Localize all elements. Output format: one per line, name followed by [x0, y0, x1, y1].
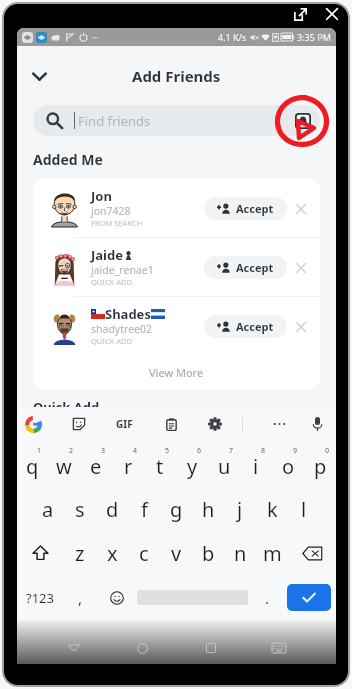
button[interactable]: Open in new	[289, 3, 311, 25]
staticText: n	[234, 540, 247, 567]
button[interactable]: Find friends	[33, 105, 320, 136]
button[interactable]: s	[64, 487, 96, 531]
button[interactable]: Back	[62, 636, 86, 660]
staticText: Accept	[236, 201, 274, 216]
button[interactable]: 3	[80, 441, 112, 487]
button[interactable]: Emoji	[97, 575, 137, 620]
button[interactable]: Shades	[33, 297, 320, 355]
button[interactable]: 9	[272, 441, 304, 487]
button[interactable]: Accept	[204, 197, 287, 220]
staticText: View More	[149, 365, 204, 380]
button[interactable]: GIF	[110, 410, 138, 438]
button[interactable]: View More	[33, 355, 320, 389]
staticText: 6	[197, 446, 202, 456]
button[interactable]: 7	[208, 441, 240, 487]
staticText: 7	[229, 446, 234, 456]
button[interactable]: Jaide	[33, 238, 320, 296]
staticText: GIF	[116, 417, 133, 431]
staticText: ,	[78, 588, 83, 608]
button[interactable]: l	[288, 487, 320, 531]
staticText: ?123	[26, 589, 54, 607]
staticText: c	[139, 540, 149, 567]
button[interactable]: Dismiss	[287, 313, 314, 340]
button[interactable]: Accept	[204, 315, 287, 338]
button[interactable]: c	[128, 531, 160, 575]
button[interactable]: x	[96, 531, 128, 575]
staticText: Find friends	[78, 112, 151, 130]
staticText: Jaide	[91, 246, 123, 264]
button[interactable]: Stickers	[65, 410, 93, 438]
button[interactable]: 5	[144, 441, 176, 487]
staticText: i	[253, 453, 259, 480]
button[interactable]: Recents	[199, 636, 223, 660]
staticText: h	[202, 496, 215, 523]
staticText: .	[265, 588, 270, 608]
button[interactable]: n	[224, 531, 256, 575]
staticText: e	[90, 453, 102, 480]
button[interactable]: m	[256, 531, 288, 575]
staticText: jaide_renae1	[91, 263, 154, 277]
button[interactable]: k	[256, 487, 288, 531]
button[interactable]: Scan Snapcode	[291, 109, 315, 133]
button[interactable]: f	[128, 487, 160, 531]
staticText: 4.1 K/s	[218, 31, 247, 43]
staticText: Jon	[91, 187, 112, 205]
button[interactable]: z	[64, 531, 96, 575]
staticText: w	[56, 453, 72, 480]
button[interactable]: 4	[112, 441, 144, 487]
staticText: 3:35 PM	[297, 31, 331, 43]
button[interactable]: j	[224, 487, 256, 531]
button[interactable]: 6	[176, 441, 208, 487]
button[interactable]: Shift	[17, 531, 64, 575]
staticText: 1	[37, 446, 42, 456]
button[interactable]: ?123	[17, 575, 63, 620]
button[interactable]: Settings	[201, 410, 229, 438]
button[interactable]: Clipboard	[157, 410, 185, 438]
button[interactable]: Hide keyboard	[267, 636, 291, 660]
staticText: x	[107, 540, 118, 567]
staticText: 9	[293, 446, 298, 456]
button[interactable]: Google search	[19, 410, 47, 438]
button[interactable]: b	[192, 531, 224, 575]
staticText: 4	[133, 446, 138, 456]
button[interactable]: Dismiss	[287, 195, 314, 222]
button[interactable]: Close	[321, 3, 343, 25]
button[interactable]: h	[192, 487, 224, 531]
button[interactable]: a	[32, 487, 64, 531]
staticText: QUICK ADD	[91, 277, 132, 287]
staticText: j	[237, 496, 243, 523]
button[interactable]: 0	[304, 441, 336, 487]
button[interactable]: Back	[24, 61, 54, 91]
staticText: 8	[261, 446, 266, 456]
staticText: 3	[101, 446, 106, 456]
button[interactable]: Dismiss	[287, 254, 314, 281]
button[interactable]: Accept	[204, 256, 287, 279]
staticText: shadytree02	[91, 322, 152, 336]
button[interactable]: Jon	[33, 179, 320, 237]
button[interactable]: ,	[63, 575, 97, 620]
button[interactable]: .	[248, 575, 287, 620]
staticText: Shades	[105, 305, 151, 323]
button[interactable]: Voice input	[303, 410, 331, 438]
staticText: Quick Add	[33, 398, 100, 416]
staticText: d	[106, 496, 119, 523]
button[interactable]: g	[160, 487, 192, 531]
button[interactable]: Backspace	[288, 531, 336, 575]
button[interactable]: More options	[265, 410, 293, 438]
staticText: QUICK ADD	[91, 336, 132, 346]
staticText: k	[267, 496, 278, 523]
button[interactable]: 8	[240, 441, 272, 487]
button[interactable]: 1	[17, 441, 48, 487]
button[interactable]: 2	[48, 441, 80, 487]
button[interactable]: v	[160, 531, 192, 575]
staticText: Added Me	[33, 150, 103, 169]
button[interactable]: Home	[130, 636, 154, 660]
staticText: FROM SEARCH	[91, 218, 143, 228]
staticText: 0	[325, 446, 330, 456]
button[interactable]: d	[96, 487, 128, 531]
button[interactable]: Enter	[287, 584, 331, 611]
staticText: y	[187, 453, 198, 480]
staticText: Accept	[236, 260, 274, 275]
